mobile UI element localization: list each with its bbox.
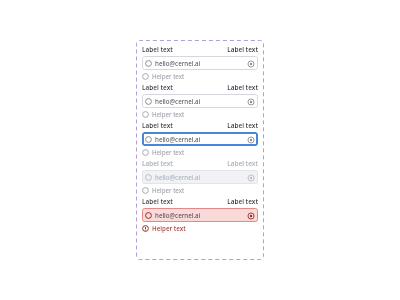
staticText: hello@cernel.ai [155,135,246,143]
staticText: Helper text [152,186,185,194]
staticText: hello@cernel.ai [155,211,246,219]
staticText: hello@cernel.ai [155,97,246,105]
button[interactable]: hello@cernel.ai [142,208,258,222]
staticText: Helper text [152,72,185,80]
staticText: Helper text [152,110,185,118]
staticText: Label text [200,45,258,54]
staticText: hello@cernel.ai [155,173,246,181]
staticText: Label text [142,197,200,206]
button[interactable]: Toggle password visibility [246,59,255,68]
staticText: hello@cernel.ai [155,59,246,67]
staticText: Label text [200,159,258,168]
staticText: Label text [200,197,258,206]
button[interactable]: hello@cernel.ai [142,132,258,146]
button[interactable]: Toggle password visibility [246,135,255,144]
button[interactable]: hello@cernel.ai [142,56,258,70]
staticText: Label text [200,83,258,92]
staticText: Helper text [152,224,186,232]
staticText: Label text [142,45,200,54]
button[interactable]: Toggle password visibility [246,211,255,220]
staticText: Label text [142,159,200,168]
staticText: Label text [200,121,258,130]
button[interactable]: hello@cernel.ai [142,94,258,108]
staticText: Label text [142,121,200,130]
button[interactable]: hello@cernel.ai [142,170,258,184]
staticText: Label text [142,83,200,92]
button[interactable]: Toggle password visibility [246,97,255,106]
button[interactable]: Toggle password visibility [246,173,255,182]
staticText: Helper text [152,148,185,156]
